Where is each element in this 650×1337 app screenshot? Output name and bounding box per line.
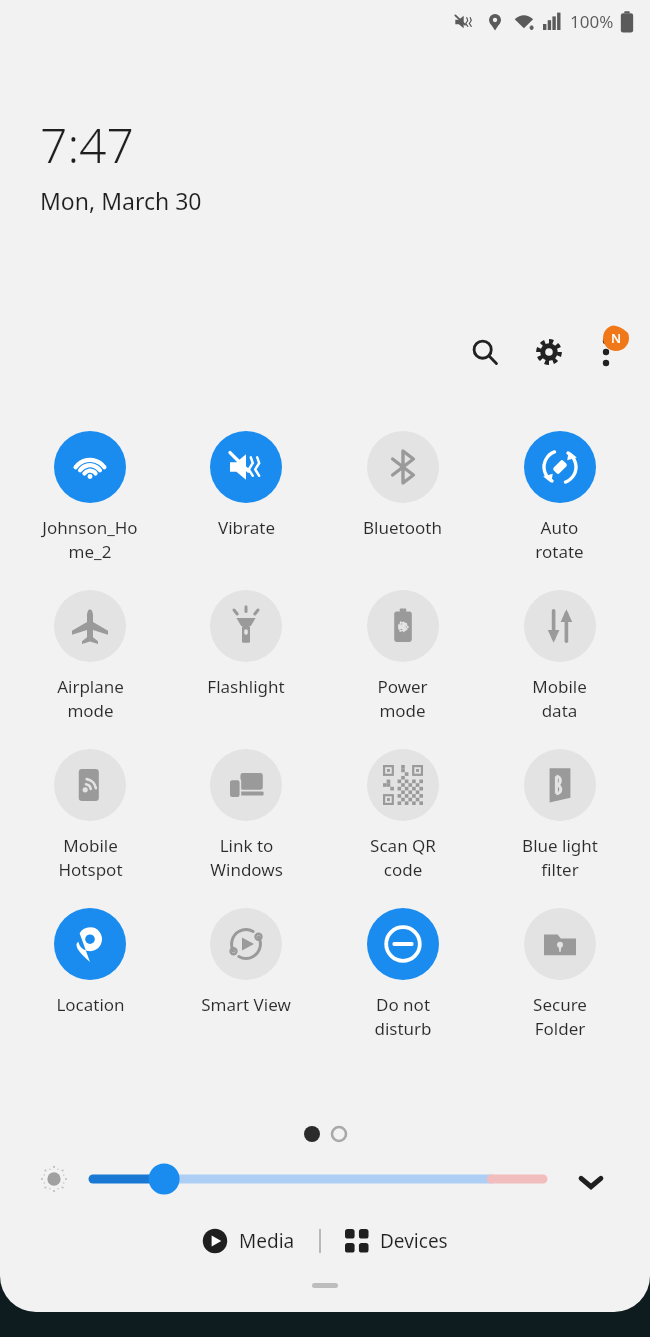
button[interactable]: Mobile Hotspot <box>12 749 168 881</box>
button[interactable]: Media <box>194 1222 303 1260</box>
button[interactable]: Blue light filter <box>481 749 638 881</box>
button[interactable]: Secure Folder <box>481 908 638 1040</box>
button[interactable]: Smart View <box>168 908 324 1016</box>
staticText: 7:47 <box>40 112 134 177</box>
staticText: Scan QR code <box>370 834 436 881</box>
staticText: Auto rotate <box>535 516 584 563</box>
staticText: Mon, March 30 <box>40 185 202 216</box>
button[interactable]: Do not disturb <box>324 908 481 1040</box>
button[interactable]: Bluetooth <box>324 431 481 539</box>
staticText: Link to Windows <box>210 834 283 881</box>
staticText: Smart View <box>201 993 291 1016</box>
button[interactable]: Search <box>458 325 512 379</box>
staticText: Airplane mode <box>57 675 124 722</box>
button[interactable]: Auto rotate <box>481 431 638 563</box>
button[interactable]: Flashlight <box>168 590 324 698</box>
staticText: Blue light filter <box>522 834 598 881</box>
staticText: N <box>611 329 622 347</box>
button[interactable]: Link to Windows <box>168 749 324 881</box>
staticText: Johnson_Ho me_2 <box>42 516 138 563</box>
button[interactable]: Airplane mode <box>12 590 168 722</box>
button[interactable]: Power mode <box>324 590 481 722</box>
staticText: Vibrate <box>218 516 275 539</box>
button[interactable]: Expand <box>566 1157 616 1207</box>
button[interactable] <box>312 1283 338 1288</box>
staticText: Location <box>56 993 125 1016</box>
button[interactable]: Johnson_Ho me_2 <box>12 431 168 563</box>
staticText: Power mode <box>377 675 428 722</box>
button[interactable]: Mobile data <box>481 590 638 722</box>
button[interactable]: More options <box>582 325 636 379</box>
button[interactable]: Vibrate <box>168 431 324 539</box>
button[interactable]: Scan QR code <box>324 749 481 881</box>
button[interactable] <box>86 1161 550 1197</box>
staticText: Mobile data <box>532 675 587 722</box>
staticText: Flashlight <box>207 675 285 698</box>
staticText: Mobile Hotspot <box>58 834 123 881</box>
button[interactable]: Location <box>12 908 168 1016</box>
button[interactable]: Devices <box>337 1222 456 1260</box>
staticText: Devices <box>380 1228 448 1254</box>
button[interactable]: Settings <box>522 325 576 379</box>
button[interactable]: Auto brightness <box>30 1155 78 1203</box>
staticText: 100% <box>570 10 614 33</box>
staticText: Bluetooth <box>363 516 442 539</box>
staticText: Media <box>239 1228 295 1254</box>
staticText: Do not disturb <box>374 993 432 1040</box>
staticText: Secure Folder <box>533 993 587 1040</box>
